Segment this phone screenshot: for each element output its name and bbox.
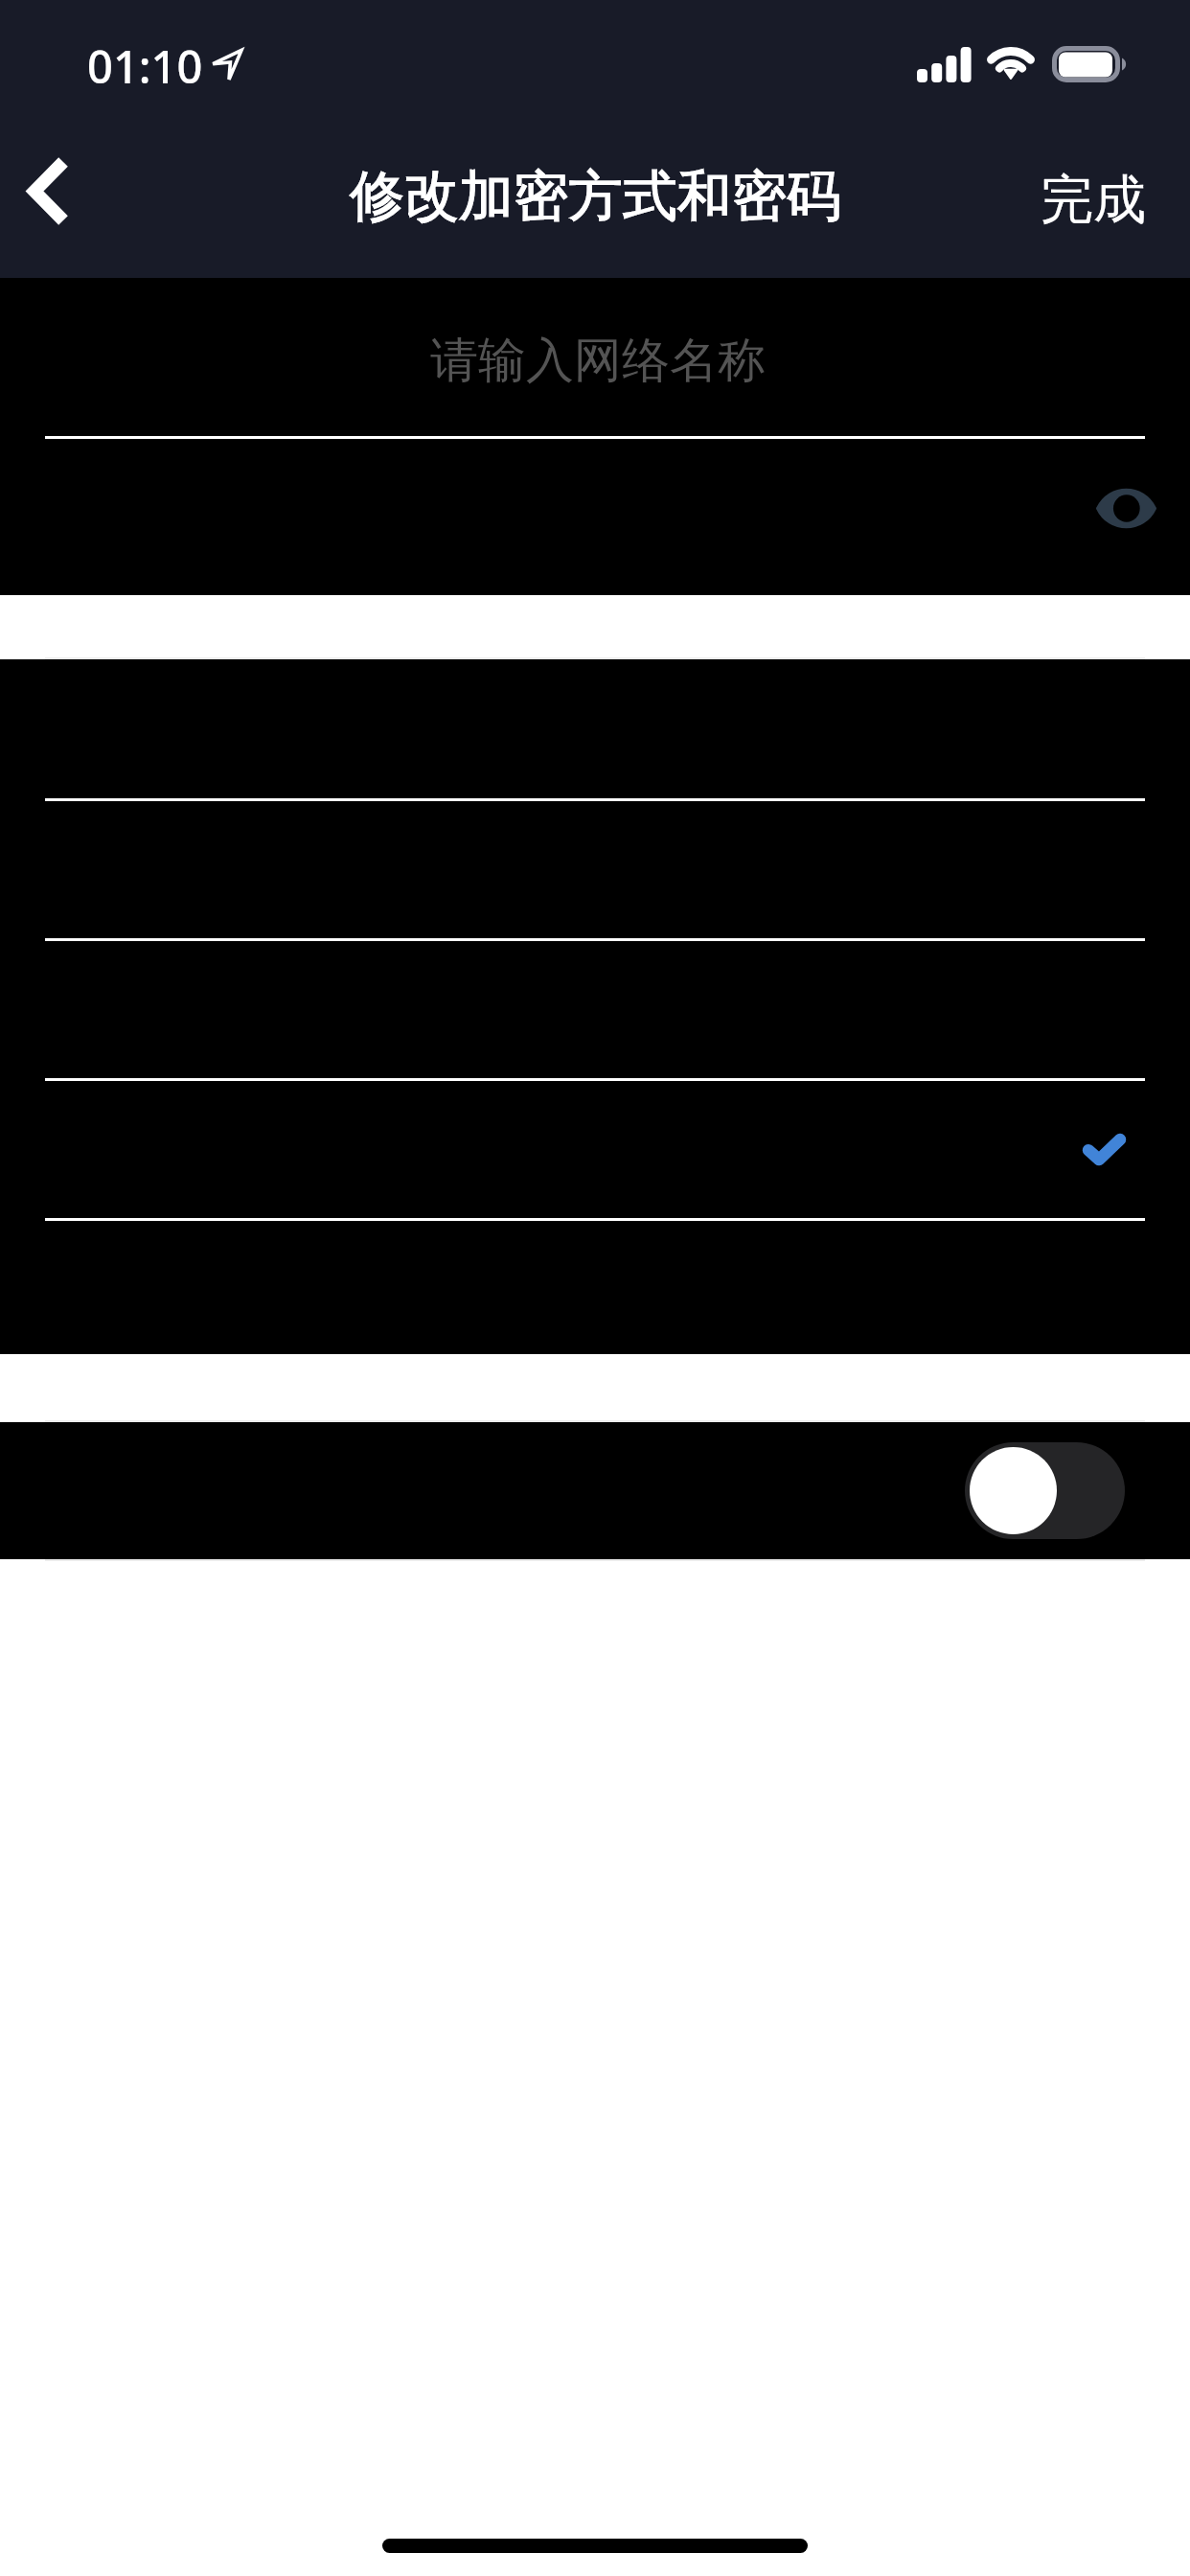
button[interactable]: Encryption option 1	[0, 659, 1190, 798]
button[interactable]: Back	[3, 126, 116, 278]
button[interactable]: Encryption option 2	[0, 798, 1190, 938]
button[interactable]: Show password	[1077, 458, 1173, 539]
button[interactable]: 请输入网络名称	[0, 278, 1190, 436]
staticText: 请输入网络名称	[430, 331, 766, 391]
staticText: 完成	[1041, 167, 1146, 233]
button[interactable]: Hide network, off	[965, 1442, 1125, 1539]
staticText: 修改加密方式和密码	[350, 162, 841, 231]
button[interactable]: Encryption option 3	[0, 938, 1190, 1078]
staticText: 01:10	[87, 35, 203, 97]
button[interactable]	[0, 439, 1190, 595]
button[interactable]: 完成	[1002, 141, 1190, 264]
button[interactable]: Encryption option 5	[0, 1218, 1190, 1354]
staticText: 修改加密方式和密码	[350, 162, 841, 231]
button[interactable]: Encryption option 4	[0, 1078, 1190, 1218]
